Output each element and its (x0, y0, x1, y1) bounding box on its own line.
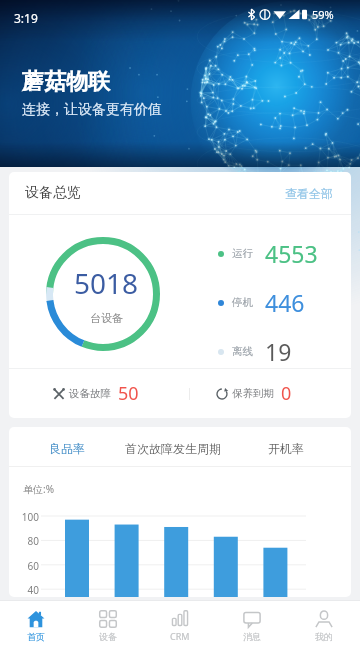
button[interactable]: 消息 (216, 601, 288, 650)
staticText: 开机率 (268, 441, 304, 456)
staticText: 我的 (315, 631, 333, 642)
staticText: CRM (170, 630, 190, 642)
staticText: 设备总览 (25, 184, 81, 202)
button[interactable]: 设备 (72, 601, 144, 650)
button[interactable]: 设备故障 (53, 381, 139, 406)
staticText: 单位:% (23, 482, 54, 496)
button[interactable]: 良品率 (49, 441, 85, 456)
button[interactable]: 我的 (288, 601, 360, 650)
staticText: 设备故障 (69, 387, 111, 400)
staticText: 4553 (265, 238, 318, 269)
button[interactable]: 保养到期 (216, 381, 292, 406)
staticText: 80 (11, 534, 39, 548)
staticText: 50 (118, 381, 139, 406)
staticText: 连接，让设备更有价值 (22, 101, 162, 119)
button[interactable]: 查看全部 (281, 182, 337, 205)
staticText: 首页 (27, 631, 45, 642)
staticText: 59% (312, 7, 334, 22)
staticText: 保养到期 (232, 387, 274, 400)
staticText: 5018 (74, 264, 139, 302)
staticText: 台设备 (90, 311, 123, 325)
button[interactable]: 首次故障发生周期 (125, 441, 221, 456)
staticText: 3:19 (14, 10, 38, 26)
staticText: 运行 (232, 247, 253, 260)
button[interactable]: 开机率 (268, 441, 304, 456)
button[interactable]: 首页 (0, 601, 72, 650)
staticText: 19 (265, 336, 292, 367)
staticText: 查看全部 (285, 186, 333, 201)
staticText: 设备 (99, 631, 117, 642)
staticText: 良品率 (49, 441, 85, 456)
staticText: 消息 (243, 631, 261, 642)
staticText: 0 (281, 381, 292, 406)
staticText: 首次故障发生周期 (125, 441, 221, 456)
staticText: 离线 (232, 345, 253, 358)
staticText: 停机 (232, 296, 253, 309)
staticText: 40 (11, 583, 39, 597)
staticText: 蘑菇物联 (22, 68, 110, 96)
staticText: 100 (11, 510, 39, 524)
staticText: 446 (265, 287, 305, 318)
staticText: 60 (11, 559, 39, 573)
button[interactable]: CRM (144, 601, 216, 650)
